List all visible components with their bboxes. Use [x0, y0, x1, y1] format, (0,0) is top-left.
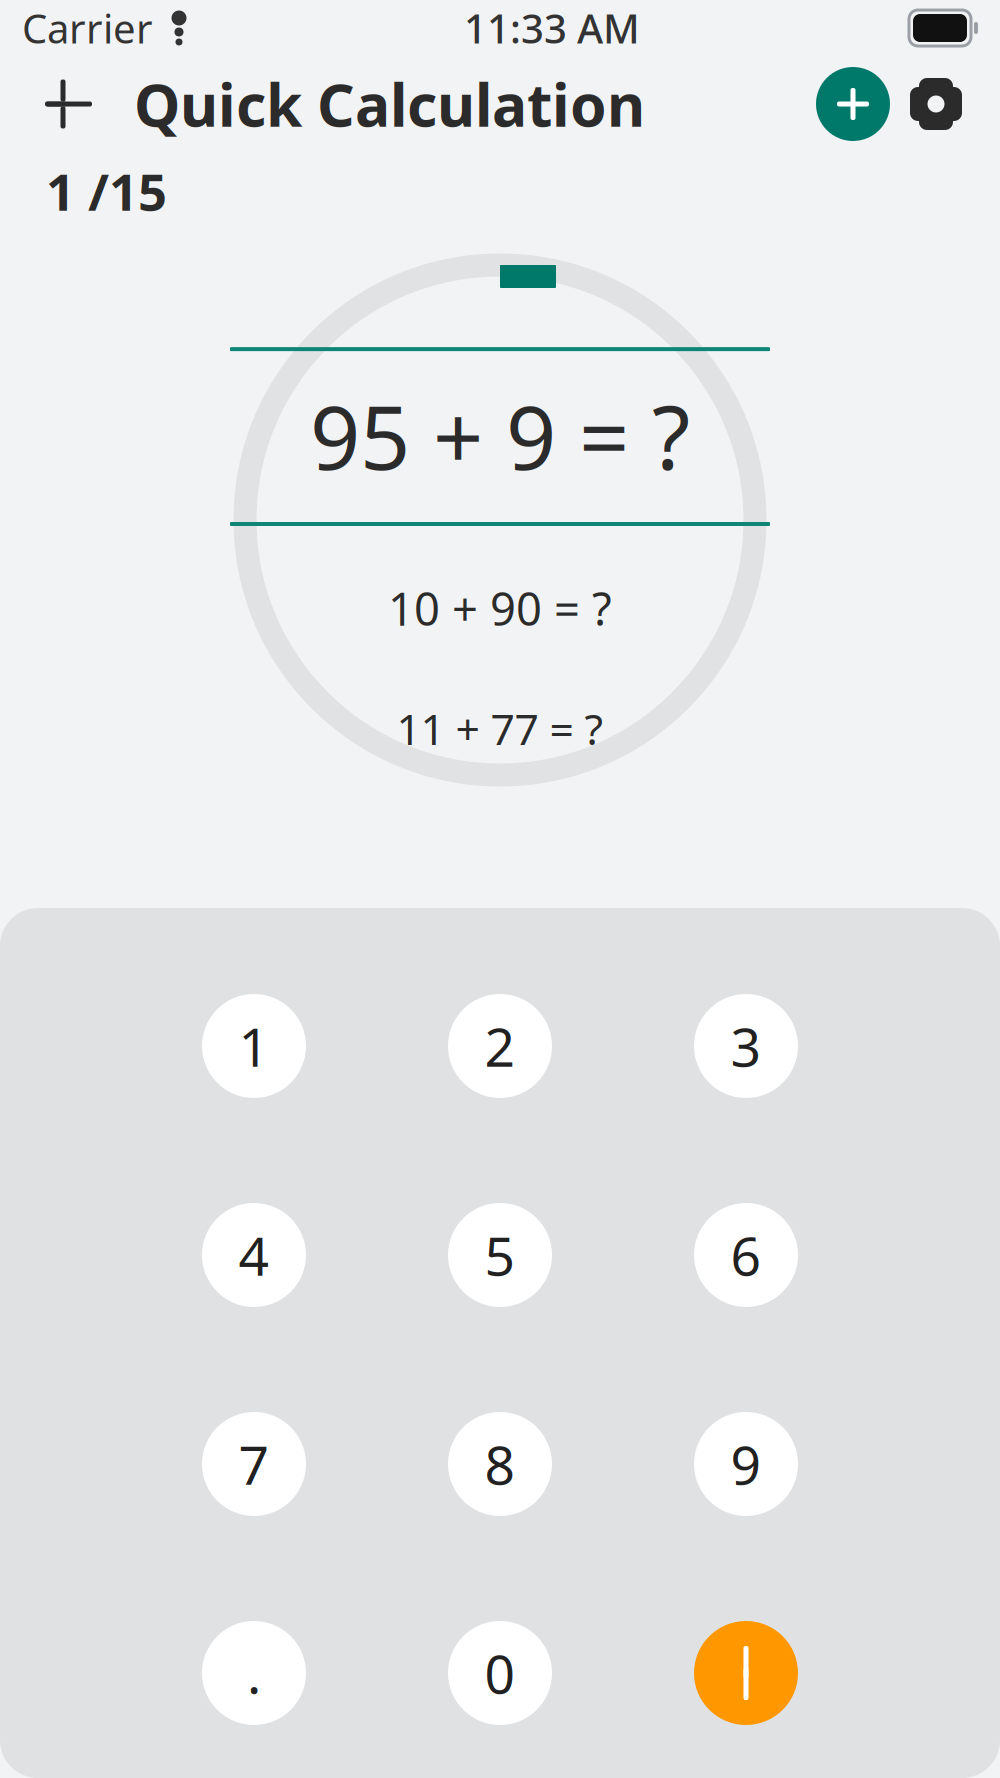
button[interactable]: 3 — [694, 994, 798, 1098]
staticText: 1 — [238, 1011, 269, 1081]
staticText: 5 — [484, 1220, 515, 1290]
button[interactable]: Settings — [896, 61, 976, 147]
staticText: 3 — [730, 1011, 761, 1081]
button[interactable]: Back — [26, 61, 112, 147]
staticText: 6 — [730, 1220, 761, 1290]
staticText: Quick Calculation — [134, 65, 645, 143]
staticText: 95 + 9 = ? — [310, 377, 690, 494]
button[interactable]: 4 — [202, 1203, 306, 1307]
button[interactable]: 5 — [448, 1203, 552, 1307]
staticText: 7 — [238, 1429, 269, 1499]
staticText: Carrier — [22, 1, 153, 54]
staticText: . — [247, 1638, 261, 1708]
staticText: 9 — [730, 1429, 761, 1499]
button[interactable]: . — [202, 1621, 306, 1725]
button[interactable]: Add — [810, 61, 896, 147]
staticText: 10 + 90 = ? — [388, 578, 612, 638]
staticText: 1 /15 — [46, 157, 167, 225]
button[interactable]: 0 — [448, 1621, 552, 1725]
staticText: 11 + 77 = ? — [396, 700, 603, 757]
staticText: 2 — [484, 1011, 515, 1081]
button[interactable]: Delete — [694, 1621, 798, 1725]
staticText: 11:33 AM — [464, 1, 640, 54]
staticText: 4 — [238, 1220, 269, 1290]
button[interactable]: 8 — [448, 1412, 552, 1516]
button[interactable]: 7 — [202, 1412, 306, 1516]
button[interactable]: 1 — [202, 994, 306, 1098]
button[interactable]: 2 — [448, 994, 552, 1098]
staticText: 8 — [484, 1429, 515, 1499]
button[interactable]: 6 — [694, 1203, 798, 1307]
button[interactable]: 9 — [694, 1412, 798, 1516]
staticText: 0 — [484, 1638, 515, 1708]
